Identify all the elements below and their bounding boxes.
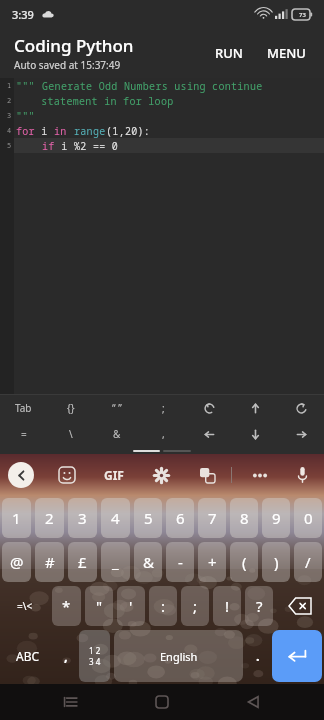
staticText: *	[62, 596, 71, 616]
staticText: if	[42, 139, 55, 153]
button[interactable]: !	[213, 586, 241, 626]
button[interactable]: ,	[140, 421, 186, 447]
staticText: i	[55, 139, 74, 153]
button[interactable]: ,	[55, 628, 77, 684]
staticText: 9	[272, 508, 281, 528]
staticText: (	[242, 552, 247, 572]
staticText: 5	[144, 508, 153, 528]
button[interactable]: English	[114, 630, 243, 682]
staticText: 1 2	[89, 645, 101, 656]
button[interactable]: Redo	[278, 395, 324, 421]
staticText: \	[69, 427, 73, 441]
button[interactable]: -	[166, 542, 194, 582]
button[interactable]: =\<	[2, 586, 48, 626]
button[interactable]: More options	[246, 461, 274, 489]
button[interactable]: Voice input	[288, 461, 316, 489]
staticText: 0	[304, 508, 313, 528]
button[interactable]: &	[94, 421, 140, 447]
staticText: _	[112, 552, 119, 572]
button[interactable]: Tab	[0, 395, 47, 421]
button[interactable]: ;	[181, 586, 209, 626]
button[interactable]: Move right	[278, 421, 324, 447]
button[interactable]: ?	[245, 586, 273, 626]
staticText: MENU	[267, 44, 306, 62]
staticText: 7	[208, 508, 217, 528]
button[interactable]: Move left	[186, 421, 232, 447]
staticText: 4	[111, 508, 120, 528]
button[interactable]: &	[134, 542, 162, 582]
button[interactable]: Back	[233, 684, 273, 720]
button[interactable]: Backspace	[277, 586, 322, 626]
staticText: 3	[78, 508, 87, 528]
button[interactable]: “ ”	[94, 395, 140, 421]
staticText: ;	[162, 401, 165, 415]
staticText: Auto saved at 15:37:49	[14, 58, 121, 72]
staticText: 5	[7, 141, 12, 151]
button[interactable]: 1 2	[79, 630, 110, 682]
staticText: 1	[12, 508, 21, 528]
button[interactable]: {}	[47, 395, 94, 421]
button[interactable]: Settings	[147, 461, 175, 489]
button[interactable]: 9	[262, 498, 290, 538]
button[interactable]: *	[52, 586, 81, 626]
staticText: 3:39	[12, 7, 34, 22]
button[interactable]: Home	[142, 684, 182, 720]
staticText: in	[54, 124, 67, 138]
button[interactable]: 1	[2, 498, 31, 538]
staticText: Tab	[15, 401, 32, 415]
button[interactable]: Move down	[232, 421, 278, 447]
button[interactable]: +	[198, 542, 226, 582]
staticText: &	[143, 552, 154, 572]
button[interactable]: =	[0, 421, 47, 447]
button[interactable]: _	[101, 542, 130, 582]
button[interactable]: Move up	[232, 395, 278, 421]
button[interactable]: .	[245, 628, 270, 684]
button[interactable]: RUN	[207, 38, 251, 68]
button[interactable]: \	[47, 421, 94, 447]
button[interactable]: (	[230, 542, 258, 582]
button[interactable]: 2	[35, 498, 64, 538]
staticText: -	[178, 552, 183, 572]
staticText: .	[256, 647, 260, 665]
button[interactable]: Back	[8, 462, 34, 488]
button[interactable]: 3	[68, 498, 97, 538]
button[interactable]: Translate	[193, 461, 221, 489]
button[interactable]: 0	[294, 498, 322, 538]
staticText: +	[208, 552, 217, 572]
button[interactable]: )	[262, 542, 290, 582]
button[interactable]: ABC	[0, 628, 55, 684]
button[interactable]: #	[35, 542, 64, 582]
button[interactable]: '	[117, 586, 145, 626]
staticText: 4	[7, 126, 12, 136]
staticText: range	[74, 124, 106, 138]
button[interactable]: £	[68, 542, 97, 582]
button[interactable]: MENU	[259, 38, 314, 68]
button[interactable]: Emoji	[53, 461, 81, 489]
button[interactable]: @	[2, 542, 31, 582]
button[interactable]: "	[85, 586, 113, 626]
staticText: =\<	[17, 599, 33, 613]
staticText: 1	[7, 81, 12, 91]
staticText: @	[10, 552, 24, 572]
button[interactable]: Undo	[186, 395, 232, 421]
button[interactable]: ;	[140, 395, 186, 421]
button[interactable]: 6	[166, 498, 194, 538]
staticText: ,	[64, 647, 68, 665]
button[interactable]: :	[149, 586, 177, 626]
staticText: """	[16, 109, 35, 123]
staticText: 6	[176, 508, 185, 528]
staticText: Generate Odd Numbers using continue	[42, 79, 263, 93]
staticText: /	[305, 552, 311, 572]
button[interactable]: /	[294, 542, 322, 582]
button[interactable]: GIF	[100, 463, 128, 487]
staticText: '	[129, 596, 133, 616]
button[interactable]: 7	[198, 498, 226, 538]
button[interactable]: 8	[230, 498, 258, 538]
button[interactable]: Enter	[272, 630, 322, 682]
button[interactable]: 4	[101, 498, 130, 538]
staticText: RUN	[215, 44, 243, 62]
button[interactable]: Recents	[51, 684, 91, 720]
button[interactable]: 5	[134, 498, 162, 538]
